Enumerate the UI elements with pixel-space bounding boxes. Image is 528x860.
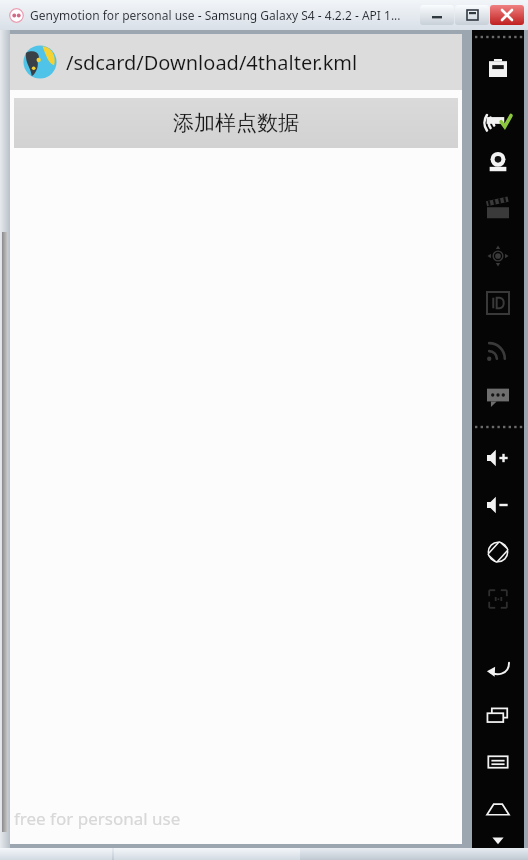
button[interactable]: Battery <box>472 44 524 91</box>
button[interactable]: 添加样点数据 <box>14 98 458 148</box>
staticText: 添加样点数据 <box>173 110 299 136</box>
button[interactable]: Close <box>490 5 524 25</box>
button[interactable]: GPS <box>472 91 524 138</box>
button[interactable]: Volume down <box>472 481 524 528</box>
button[interactable]: SMS <box>472 373 524 420</box>
button[interactable]: Rotate <box>472 528 524 575</box>
staticText: /sdcard/Download/4thalter.kml <box>66 49 358 76</box>
button[interactable]: /sdcard/Download/4thalter.kml <box>10 34 462 90</box>
button[interactable]: Scale 1:1 <box>472 575 524 622</box>
staticText: free for personal use <box>14 807 181 830</box>
button[interactable]: Menu <box>472 738 524 785</box>
button[interactable]: Recents <box>472 691 524 738</box>
button[interactable]: Minimize <box>420 5 454 25</box>
button[interactable]: Video <box>472 185 524 232</box>
button[interactable]: D-pad <box>472 232 524 279</box>
button[interactable]: Maximize <box>455 5 489 25</box>
staticText: Genymotion for personal use - Samsung Ga… <box>30 7 401 23</box>
button[interactable]: Home <box>472 785 524 832</box>
button[interactable]: Volume up <box>472 434 524 481</box>
button[interactable]: Identifiers <box>472 279 524 326</box>
button[interactable]: Network <box>472 326 524 373</box>
button[interactable]: More <box>472 832 524 848</box>
button[interactable]: Camera <box>472 138 524 185</box>
button[interactable]: Back <box>472 644 524 691</box>
